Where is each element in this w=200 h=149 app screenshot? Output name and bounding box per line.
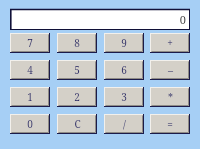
button[interactable]: 0 [10,9,190,30]
button[interactable]: 7 [10,33,50,53]
button[interactable]: C [57,114,97,134]
button[interactable]: 4 [10,60,50,80]
staticText: 2 [74,90,80,104]
button[interactable]: = [150,114,190,134]
button[interactable]: 3 [104,87,144,107]
staticText: * [168,90,173,104]
staticText: 0 [179,12,186,27]
button[interactable]: * [150,87,190,107]
staticText: 8 [74,36,80,50]
button[interactable]: + [150,33,190,53]
staticText: 9 [121,36,127,50]
staticText: 6 [121,63,127,77]
button[interactable]: / [104,114,144,134]
button[interactable]: 1 [10,87,50,107]
button[interactable]: 6 [104,60,144,80]
staticText: + [167,36,173,50]
button[interactable]: 5 [57,60,97,80]
staticText: / [123,117,126,131]
button[interactable]: 0 [10,114,50,134]
staticText: 5 [74,63,80,77]
button[interactable]: 2 [57,87,97,107]
staticText: C [74,117,81,131]
staticText: – [168,63,173,77]
staticText: 3 [121,90,127,104]
staticText: 4 [27,63,33,77]
staticText: 0 [27,117,33,131]
staticText: 7 [27,36,33,50]
button[interactable]: 9 [104,33,144,53]
button[interactable]: 8 [57,33,97,53]
staticText: 1 [27,90,33,104]
button[interactable]: – [150,60,190,80]
staticText: = [167,117,173,131]
